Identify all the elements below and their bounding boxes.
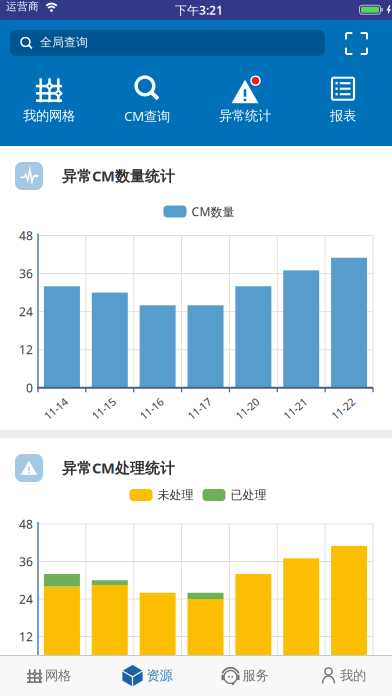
staticText: 全局查询 [40,35,88,50]
staticText: 已处理 [230,488,266,502]
button[interactable]: CM查询 [98,74,196,125]
staticText: 36 [19,266,33,281]
staticText: 0 [26,380,33,396]
staticText: 运营商 [6,0,39,13]
staticText: 11-14 [42,402,69,416]
staticText: 未处理 [157,488,193,502]
staticText: 服务 [242,667,268,684]
button[interactable]: 异常统计 [196,75,294,124]
button[interactable]: Scan [344,31,369,56]
button[interactable]: 服务 [196,655,294,696]
staticText: 24 [19,304,33,320]
staticText: 12 [19,342,33,358]
button[interactable]: 我的 [294,655,392,696]
staticText: CM数量 [191,203,234,219]
staticText: 11-22 [330,402,357,416]
staticText: 11-16 [138,402,165,416]
staticText: 异常CM数量统计 [62,166,175,185]
staticText: 48 [19,227,33,243]
button[interactable]: 全局查询 [10,30,325,56]
staticText: CM查询 [124,107,170,125]
staticText: 48 [19,516,33,532]
staticText: 下午3:21 [175,2,223,18]
button[interactable]: 资源 [98,655,196,696]
staticText: 36 [19,553,33,569]
staticText: 24 [19,591,33,607]
staticText: 12 [19,628,33,644]
staticText: 资源 [146,667,172,684]
staticText: 11-20 [234,402,261,416]
staticText: 我的 [340,667,366,684]
staticText: 11-17 [186,402,213,416]
staticText: 11-15 [90,402,117,416]
staticText: 11-21 [282,402,309,416]
button[interactable]: 网格 [0,655,98,696]
button[interactable]: 我的网格 [0,75,98,124]
staticText: 我的网格 [23,108,75,124]
staticText: 网格 [45,667,71,684]
staticText: 0 [26,666,33,682]
staticText: 异常CM处理统计 [62,458,175,477]
staticText: 报表 [330,108,356,124]
staticText: 异常统计 [219,108,271,124]
button[interactable]: 报表 [294,75,392,124]
